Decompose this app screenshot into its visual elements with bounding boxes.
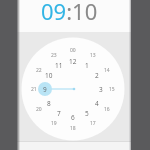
button[interactable]: 4 — [87, 96, 107, 110]
button[interactable]: 12 — [63, 54, 83, 68]
button[interactable]: 8 — [39, 96, 59, 110]
staticText: 10 — [45, 71, 53, 80]
staticText: 21 — [31, 86, 37, 93]
staticText: 1 — [85, 61, 89, 70]
staticText: 11 — [55, 61, 63, 70]
button[interactable]: 22 — [29, 63, 49, 77]
staticText: 18 — [70, 125, 76, 132]
button[interactable]: 13 — [83, 48, 103, 62]
button[interactable]: 15 — [102, 82, 122, 96]
staticText: 5 — [85, 109, 89, 118]
staticText: 17 — [90, 120, 96, 127]
button[interactable]: 09:10 — [17, 0, 131, 32]
staticText: 8 — [47, 99, 51, 108]
staticText: 6 — [71, 113, 75, 122]
staticText: 23 — [51, 52, 57, 59]
button[interactable]: 10 — [39, 68, 59, 82]
staticText: 3 — [99, 85, 103, 94]
staticText: 12 — [69, 57, 77, 66]
staticText: 2 — [95, 71, 99, 80]
staticText: 22 — [36, 67, 42, 74]
button[interactable]: 16 — [97, 102, 117, 116]
staticText: 20 — [36, 106, 42, 113]
button[interactable]: 9 — [35, 82, 55, 96]
staticText: 09:10 — [41, 0, 98, 26]
button[interactable]: 23 — [44, 48, 64, 62]
button[interactable]: 11 — [49, 58, 69, 72]
staticText: 15 — [109, 86, 115, 93]
button[interactable]: 00 — [63, 43, 83, 57]
button[interactable]: 1 — [17, 32, 131, 141]
staticText: 4 — [95, 99, 99, 108]
button[interactable]: 1 — [77, 58, 97, 72]
staticText: 13 — [90, 52, 96, 59]
button[interactable]: 3 — [91, 82, 111, 96]
button[interactable]: 5 — [77, 106, 97, 120]
button[interactable]: 19 — [44, 116, 64, 130]
staticText: 14 — [104, 67, 110, 74]
staticText: 16 — [104, 106, 110, 113]
button[interactable]: 2 — [87, 68, 107, 82]
button[interactable]: 20 — [29, 102, 49, 116]
button[interactable]: 14 — [97, 63, 117, 77]
button[interactable] — [17, 142, 131, 150]
staticText: 9 — [43, 85, 47, 94]
staticText: 7 — [57, 109, 61, 118]
button[interactable]: 21 — [24, 82, 44, 96]
staticText: 00 — [70, 47, 76, 54]
button[interactable]: 17 — [83, 116, 103, 130]
button[interactable]: 18 — [63, 121, 83, 135]
staticText: 19 — [51, 120, 57, 127]
button[interactable]: 6 — [63, 110, 83, 124]
button[interactable]: 7 — [49, 106, 69, 120]
